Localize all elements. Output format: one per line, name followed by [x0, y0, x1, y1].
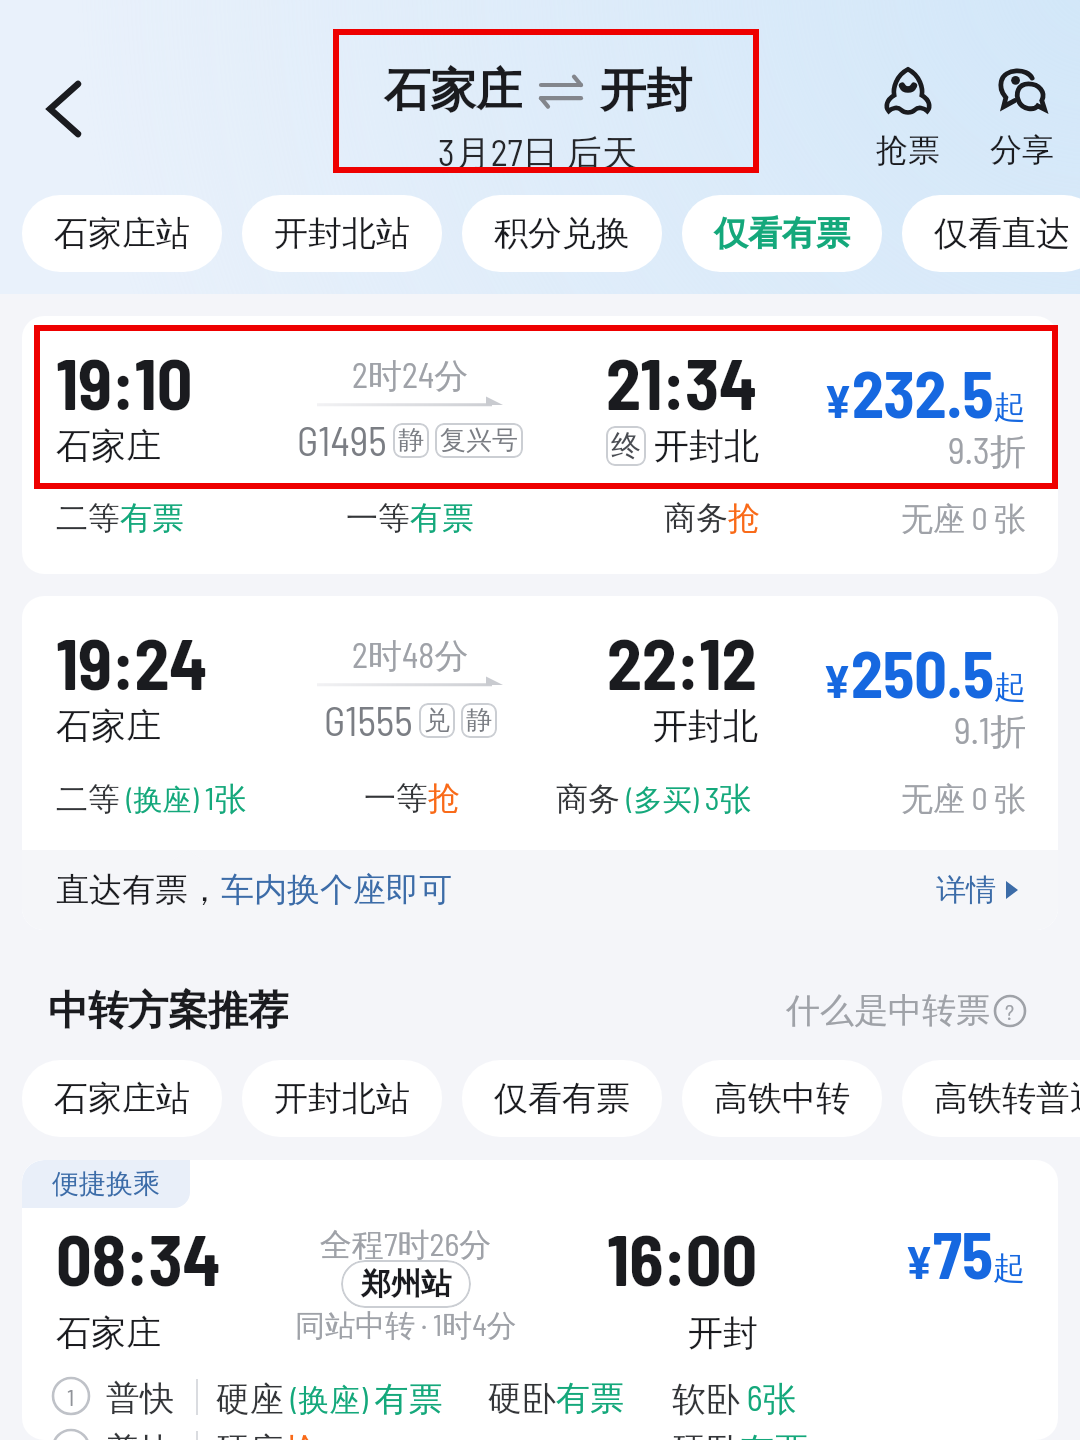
button[interactable]: 直达有票，车内换个座即可 — [22, 850, 1058, 930]
button[interactable]: 仅看有票 — [462, 1060, 662, 1137]
staticText: 普快 — [106, 1377, 174, 1420]
staticText: 商务抢 — [664, 498, 760, 538]
staticText: 同站中转 · 1时4分 — [295, 1306, 517, 1345]
staticText: 全程7时26分 — [320, 1224, 492, 1266]
button[interactable]: 仅看直达 — [902, 195, 1080, 272]
staticText: 石家庄站 — [54, 1077, 190, 1120]
staticText: 详情 — [936, 871, 996, 909]
staticText: 21:34 — [606, 340, 758, 424]
staticText: ¥250.5起 — [823, 634, 1026, 711]
staticText: G1555 — [324, 696, 413, 744]
staticText: 便捷换乘 — [52, 1167, 160, 1201]
button[interactable]: 高铁中转 — [682, 1060, 882, 1137]
staticText: 08:34 — [56, 1216, 221, 1300]
staticText: 商务 (多买) 3张 — [556, 778, 752, 820]
staticText: 仅看有票 — [494, 1077, 630, 1120]
staticText: 二等 (换座) 1张 — [56, 778, 247, 820]
staticText: ¥232.5起 — [824, 354, 1026, 431]
staticText: 硬卧有票 — [672, 1429, 808, 1440]
staticText: 石家庄 — [56, 424, 161, 468]
button[interactable]: 石家庄站 — [22, 195, 222, 272]
button[interactable]: 什么是中转票 — [786, 989, 1026, 1032]
staticText: 一等有票 — [346, 498, 474, 538]
staticText: ? — [1005, 998, 1015, 1024]
staticText: 仅看直达 — [934, 212, 1070, 255]
staticText: 静 — [398, 424, 424, 457]
staticText: 仅看有票 — [714, 212, 850, 255]
staticText: 开封北 — [654, 424, 759, 468]
staticText: 开封北站 — [274, 212, 410, 255]
staticText: 石家庄站 — [54, 212, 190, 255]
staticText: 石家庄 — [56, 1311, 161, 1355]
button[interactable]: 积分兑换 — [462, 195, 662, 272]
staticText: 高铁中转 — [714, 1077, 850, 1120]
staticText: 9.1折 — [954, 708, 1026, 755]
staticText: 3月27日 后天 — [438, 130, 638, 177]
staticText: 9.3折 — [948, 428, 1026, 475]
staticText: 抢票 — [876, 130, 940, 170]
button[interactable]: 开封北站 — [242, 195, 442, 272]
button[interactable]: 开封北站 — [242, 1060, 442, 1137]
staticText: 2时24分 — [352, 354, 469, 398]
staticText: 16:00 — [607, 1216, 758, 1300]
staticText: 中转方案推荐 — [48, 985, 288, 1035]
staticText: 二等有票 — [56, 498, 184, 538]
staticText: 终 — [611, 427, 641, 465]
staticText: 开封 — [600, 62, 692, 120]
staticText: 高铁转普通 — [934, 1077, 1080, 1120]
staticText: 开封 — [688, 1311, 758, 1355]
staticText: 郑州站 — [361, 1265, 451, 1303]
staticText: 无座 0 张 — [901, 778, 1026, 820]
staticText: 硬卧有票 — [488, 1377, 624, 1420]
staticText: 分享 — [990, 130, 1054, 170]
button[interactable]: 仅看有票 — [682, 195, 882, 272]
staticText: G1495 — [297, 416, 387, 464]
staticText: ¥75起 — [905, 1215, 1026, 1292]
staticText: 22:12 — [607, 620, 757, 704]
button[interactable]: 便捷换乘 — [22, 1160, 1058, 1440]
staticText: 19:10 — [56, 340, 193, 424]
staticText: 石家庄 — [56, 704, 161, 748]
staticText: 石家庄 — [384, 62, 522, 120]
staticText: 静 — [466, 704, 492, 737]
button[interactable]: 石家庄站 — [22, 1060, 222, 1137]
button[interactable]: 19:24 — [22, 596, 1058, 930]
staticText: 硬座抢 — [216, 1429, 318, 1440]
button[interactable]: 19:10 — [22, 316, 1058, 574]
staticText: 2时48分 — [352, 634, 469, 678]
staticText: 兑 — [424, 704, 450, 737]
staticText: 直达有票，车内换个座即可 — [56, 869, 452, 911]
button[interactable]: Back — [50, 84, 78, 134]
staticText: 开封北站 — [274, 1077, 410, 1120]
staticText: 什么是中转票 — [786, 989, 990, 1032]
staticText: 硬座 (换座) 有票 — [216, 1377, 443, 1421]
staticText: 开封北 — [653, 704, 758, 748]
button[interactable]: 高铁转普通 — [902, 1060, 1080, 1137]
staticText: 一等抢 — [364, 778, 460, 818]
staticText: 软卧 6张 — [672, 1377, 797, 1421]
staticText: 无座 0 张 — [901, 498, 1026, 540]
staticText: 1 — [67, 1382, 75, 1411]
staticText: 积分兑换 — [494, 212, 630, 255]
button[interactable]: 抢票 — [856, 68, 960, 170]
staticText: 普快 — [106, 1429, 174, 1440]
staticText: 19:24 — [56, 620, 208, 704]
staticText: 复兴号 — [440, 424, 518, 457]
button[interactable]: 分享 — [970, 68, 1074, 170]
